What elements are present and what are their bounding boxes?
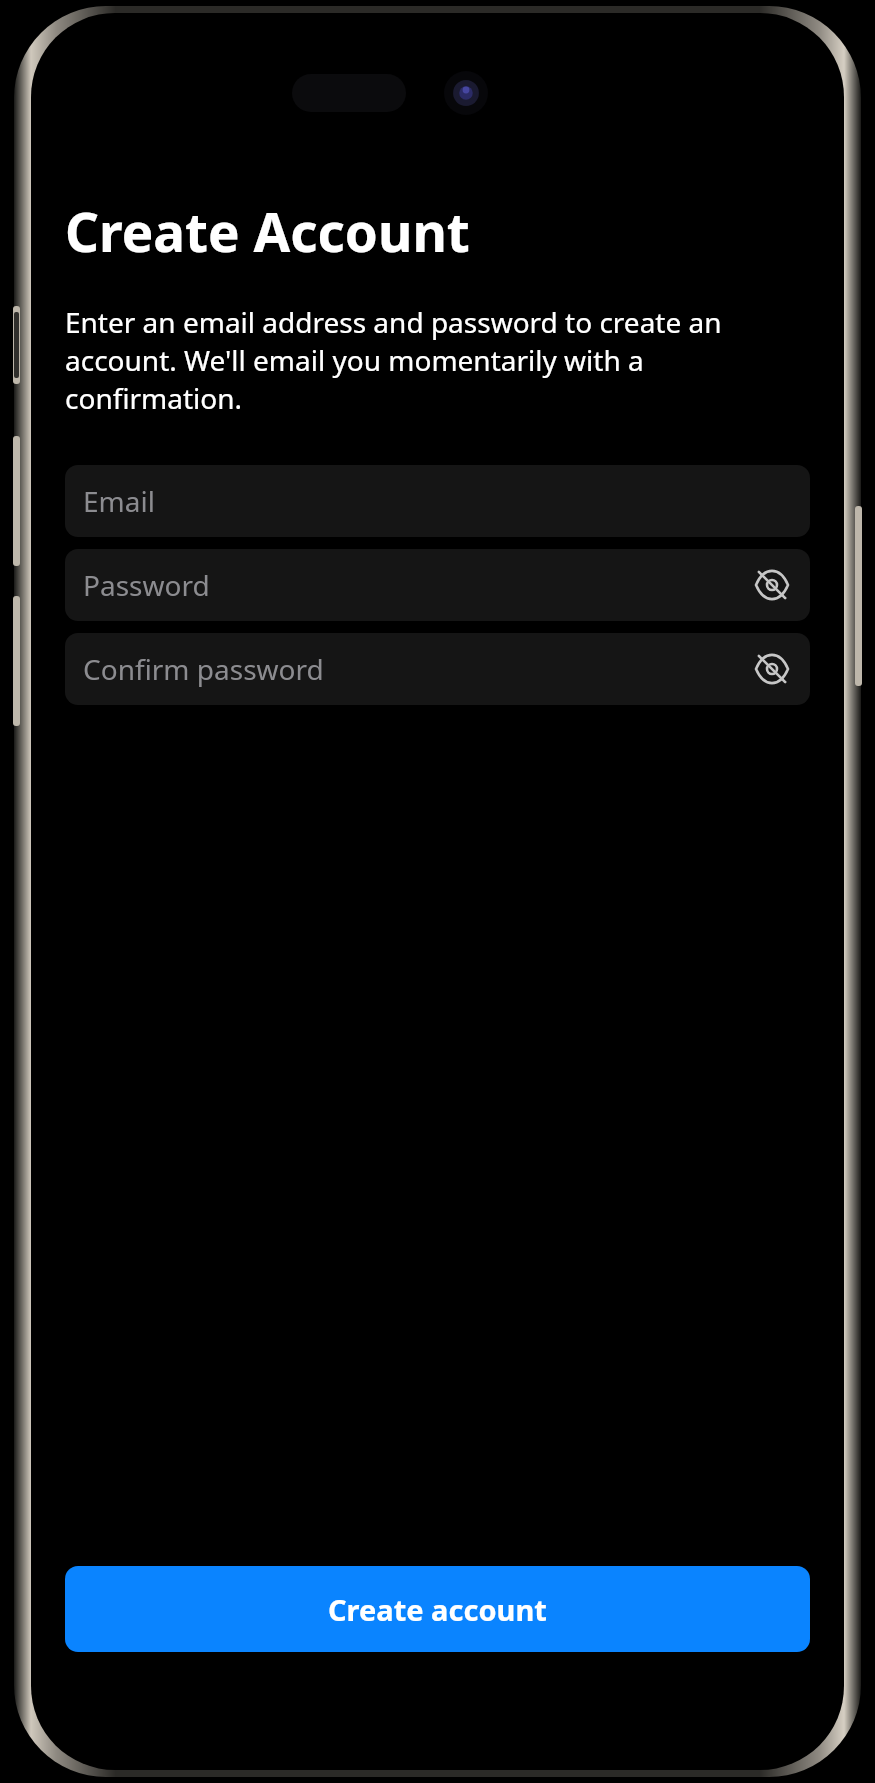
button[interactable]: Create account	[65, 1566, 810, 1652]
staticText: Confirm password	[83, 650, 744, 688]
button[interactable]: Email	[65, 465, 810, 537]
staticText: Email	[83, 482, 810, 520]
button[interactable]: Show password	[744, 557, 800, 613]
staticText: Create account	[328, 1590, 547, 1629]
staticText: Enter an email address and password to c…	[65, 303, 814, 417]
staticText: Create Account	[65, 195, 470, 267]
button[interactable]: Confirm password	[65, 633, 810, 705]
button[interactable]: Password	[65, 549, 810, 621]
button[interactable]: Show password	[744, 641, 800, 697]
staticText: Password	[83, 566, 744, 604]
